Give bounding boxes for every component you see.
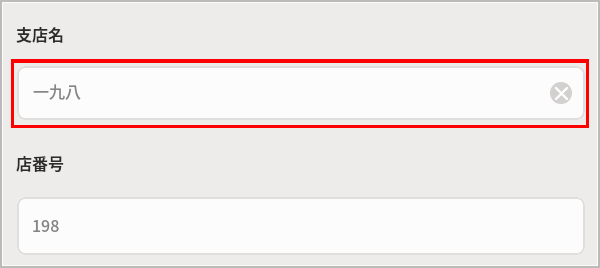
staticText: 一九八 [33,79,82,102]
button[interactable]: 一九八 [17,66,585,120]
staticText: 店番号 [16,151,65,174]
staticText: 支店名 [16,22,65,45]
button[interactable]: 198 [17,197,585,255]
staticText: 198 [32,213,60,236]
button[interactable]: Clear text [550,82,572,104]
